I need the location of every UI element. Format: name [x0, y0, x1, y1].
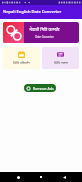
staticText: Remove Ads: [33, 86, 54, 91]
button[interactable]: नेपाली मिति कन्भर्टर: [3, 22, 79, 43]
staticText: मिति परिवर्तन: [13, 60, 30, 65]
button[interactable]: मिति गणना: [42, 47, 79, 69]
staticText: मिति गणना: [54, 60, 68, 65]
button[interactable]: मिति परिवर्तन: [3, 47, 40, 69]
button[interactable]: Back: [59, 172, 69, 182]
staticText: नेपाली मिति कन्भर्टर: [29, 27, 60, 33]
button[interactable]: Recent apps: [36, 172, 46, 182]
button[interactable]: Remove Ads: [26, 84, 54, 92]
staticText: Date Converter: [35, 35, 54, 39]
button[interactable]: Home: [13, 172, 23, 182]
staticText: Nepali English Date Converter: [3, 9, 62, 15]
